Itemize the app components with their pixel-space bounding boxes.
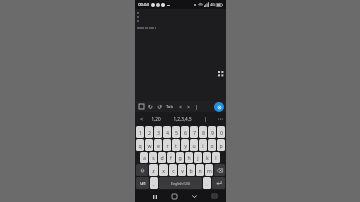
staticText: n: [198, 167, 202, 174]
button[interactable]: 7: [190, 126, 198, 138]
staticText: e: [157, 142, 160, 149]
button[interactable]: Keyboard settings: [214, 102, 224, 112]
button[interactable]: ,: [150, 177, 158, 189]
button[interactable]: i: [199, 139, 207, 151]
button[interactable]: More options: [217, 113, 223, 124]
staticText: 00:04: [138, 2, 149, 8]
button[interactable]: q: [136, 139, 144, 151]
staticText: 1,2,3,4,5: [173, 116, 192, 122]
staticText: 4G: [210, 2, 215, 7]
button[interactable]: |: [193, 102, 199, 111]
staticText: z: [152, 167, 155, 174]
button[interactable]: o: [208, 139, 216, 151]
button[interactable]: Shift: [136, 164, 148, 176]
staticText: w: [147, 142, 152, 149]
button[interactable]: 4: [163, 126, 171, 138]
button[interactable]: c: [169, 164, 177, 176]
button[interactable]: s: [149, 152, 157, 163]
staticText: t: [175, 142, 177, 149]
staticText: |: [195, 104, 198, 110]
staticText: .: [206, 180, 208, 187]
staticText: 7: [193, 129, 196, 136]
button[interactable]: u: [190, 139, 198, 151]
staticText: m: [207, 167, 212, 174]
button[interactable]: h: [185, 152, 193, 163]
staticText: 1: [139, 129, 142, 136]
button[interactable]: Back: [190, 192, 199, 201]
button[interactable]: 1: [136, 126, 144, 138]
button[interactable]: g: [176, 152, 184, 163]
staticText: <: [140, 116, 143, 122]
staticText: f: [170, 154, 172, 161]
button[interactable]: Resize window: [217, 70, 224, 77]
button[interactable]: Redo: [156, 103, 163, 110]
staticText: x: [162, 167, 165, 174]
button[interactable]: j: [194, 152, 202, 163]
button[interactable]: 3: [154, 126, 162, 138]
button[interactable]: 9: [208, 126, 216, 138]
staticText: English (US): [171, 181, 190, 186]
button[interactable]: Enter: [212, 177, 225, 189]
button[interactable]: Symbols: [136, 177, 149, 189]
staticText: s: [152, 154, 155, 161]
staticText: 3: [157, 129, 160, 136]
button[interactable]: 8: [199, 126, 207, 138]
button[interactable]: Previous suggestion: [138, 113, 144, 124]
button[interactable]: l: [212, 152, 220, 163]
button[interactable]: 5: [172, 126, 180, 138]
staticText: a: [143, 154, 146, 161]
staticText: 2: [148, 129, 151, 136]
staticText: u: [192, 142, 196, 149]
staticText: 9: [211, 129, 214, 136]
staticText: q: [138, 142, 142, 149]
staticText: 5: [175, 129, 178, 136]
button[interactable]: v: [178, 164, 186, 176]
staticText: d: [160, 154, 164, 161]
button[interactable]: x: [159, 164, 168, 176]
button[interactable]: 2: [145, 126, 153, 138]
button[interactable]: w: [145, 139, 153, 151]
button[interactable]: Clipboard: [138, 103, 145, 110]
staticText: h: [187, 154, 191, 161]
button[interactable]: f: [167, 152, 175, 163]
button[interactable]: m: [205, 164, 213, 176]
staticText: ,: [153, 180, 155, 187]
button[interactable]: Recents: [150, 192, 159, 201]
button[interactable]: Home: [170, 192, 179, 201]
staticText: 6: [184, 129, 187, 136]
button[interactable]: b: [187, 164, 195, 176]
button[interactable]: e: [154, 139, 162, 151]
button[interactable]: Change keyboard: [210, 192, 218, 200]
button[interactable]: d: [158, 152, 166, 163]
button[interactable]: a: [140, 152, 148, 163]
button[interactable]: .: [203, 177, 211, 189]
button[interactable]: p: [217, 139, 225, 151]
button[interactable]: z: [149, 164, 158, 176]
button[interactable]: y: [181, 139, 189, 151]
button[interactable]: r: [163, 139, 171, 151]
staticText: 4: [166, 129, 169, 136]
staticText: 8: [202, 129, 205, 136]
staticText: k: [206, 154, 209, 161]
staticText: |: [204, 116, 207, 122]
staticText: r: [166, 142, 169, 149]
staticText: p: [219, 142, 223, 149]
button[interactable]: 6: [181, 126, 189, 138]
button[interactable]: Backspace: [214, 164, 225, 176]
button[interactable]: n: [196, 164, 204, 176]
button[interactable]: 0: [217, 126, 225, 138]
button[interactable]: >: [185, 102, 191, 111]
button[interactable]: English (US): [159, 177, 202, 189]
staticText: b: [189, 167, 193, 174]
button[interactable]: Tab: [165, 104, 174, 110]
button[interactable]: |: [202, 116, 209, 122]
staticText: y: [184, 142, 187, 149]
staticText: 1,20: [151, 116, 161, 122]
staticText: c: [172, 167, 175, 174]
button[interactable]: 1,2,3,4,5: [171, 116, 194, 122]
button[interactable]: Undo: [147, 103, 154, 110]
button[interactable]: <: [177, 102, 183, 111]
button[interactable]: t: [172, 139, 180, 151]
button[interactable]: k: [203, 152, 211, 163]
button[interactable]: 1,20: [149, 116, 163, 122]
